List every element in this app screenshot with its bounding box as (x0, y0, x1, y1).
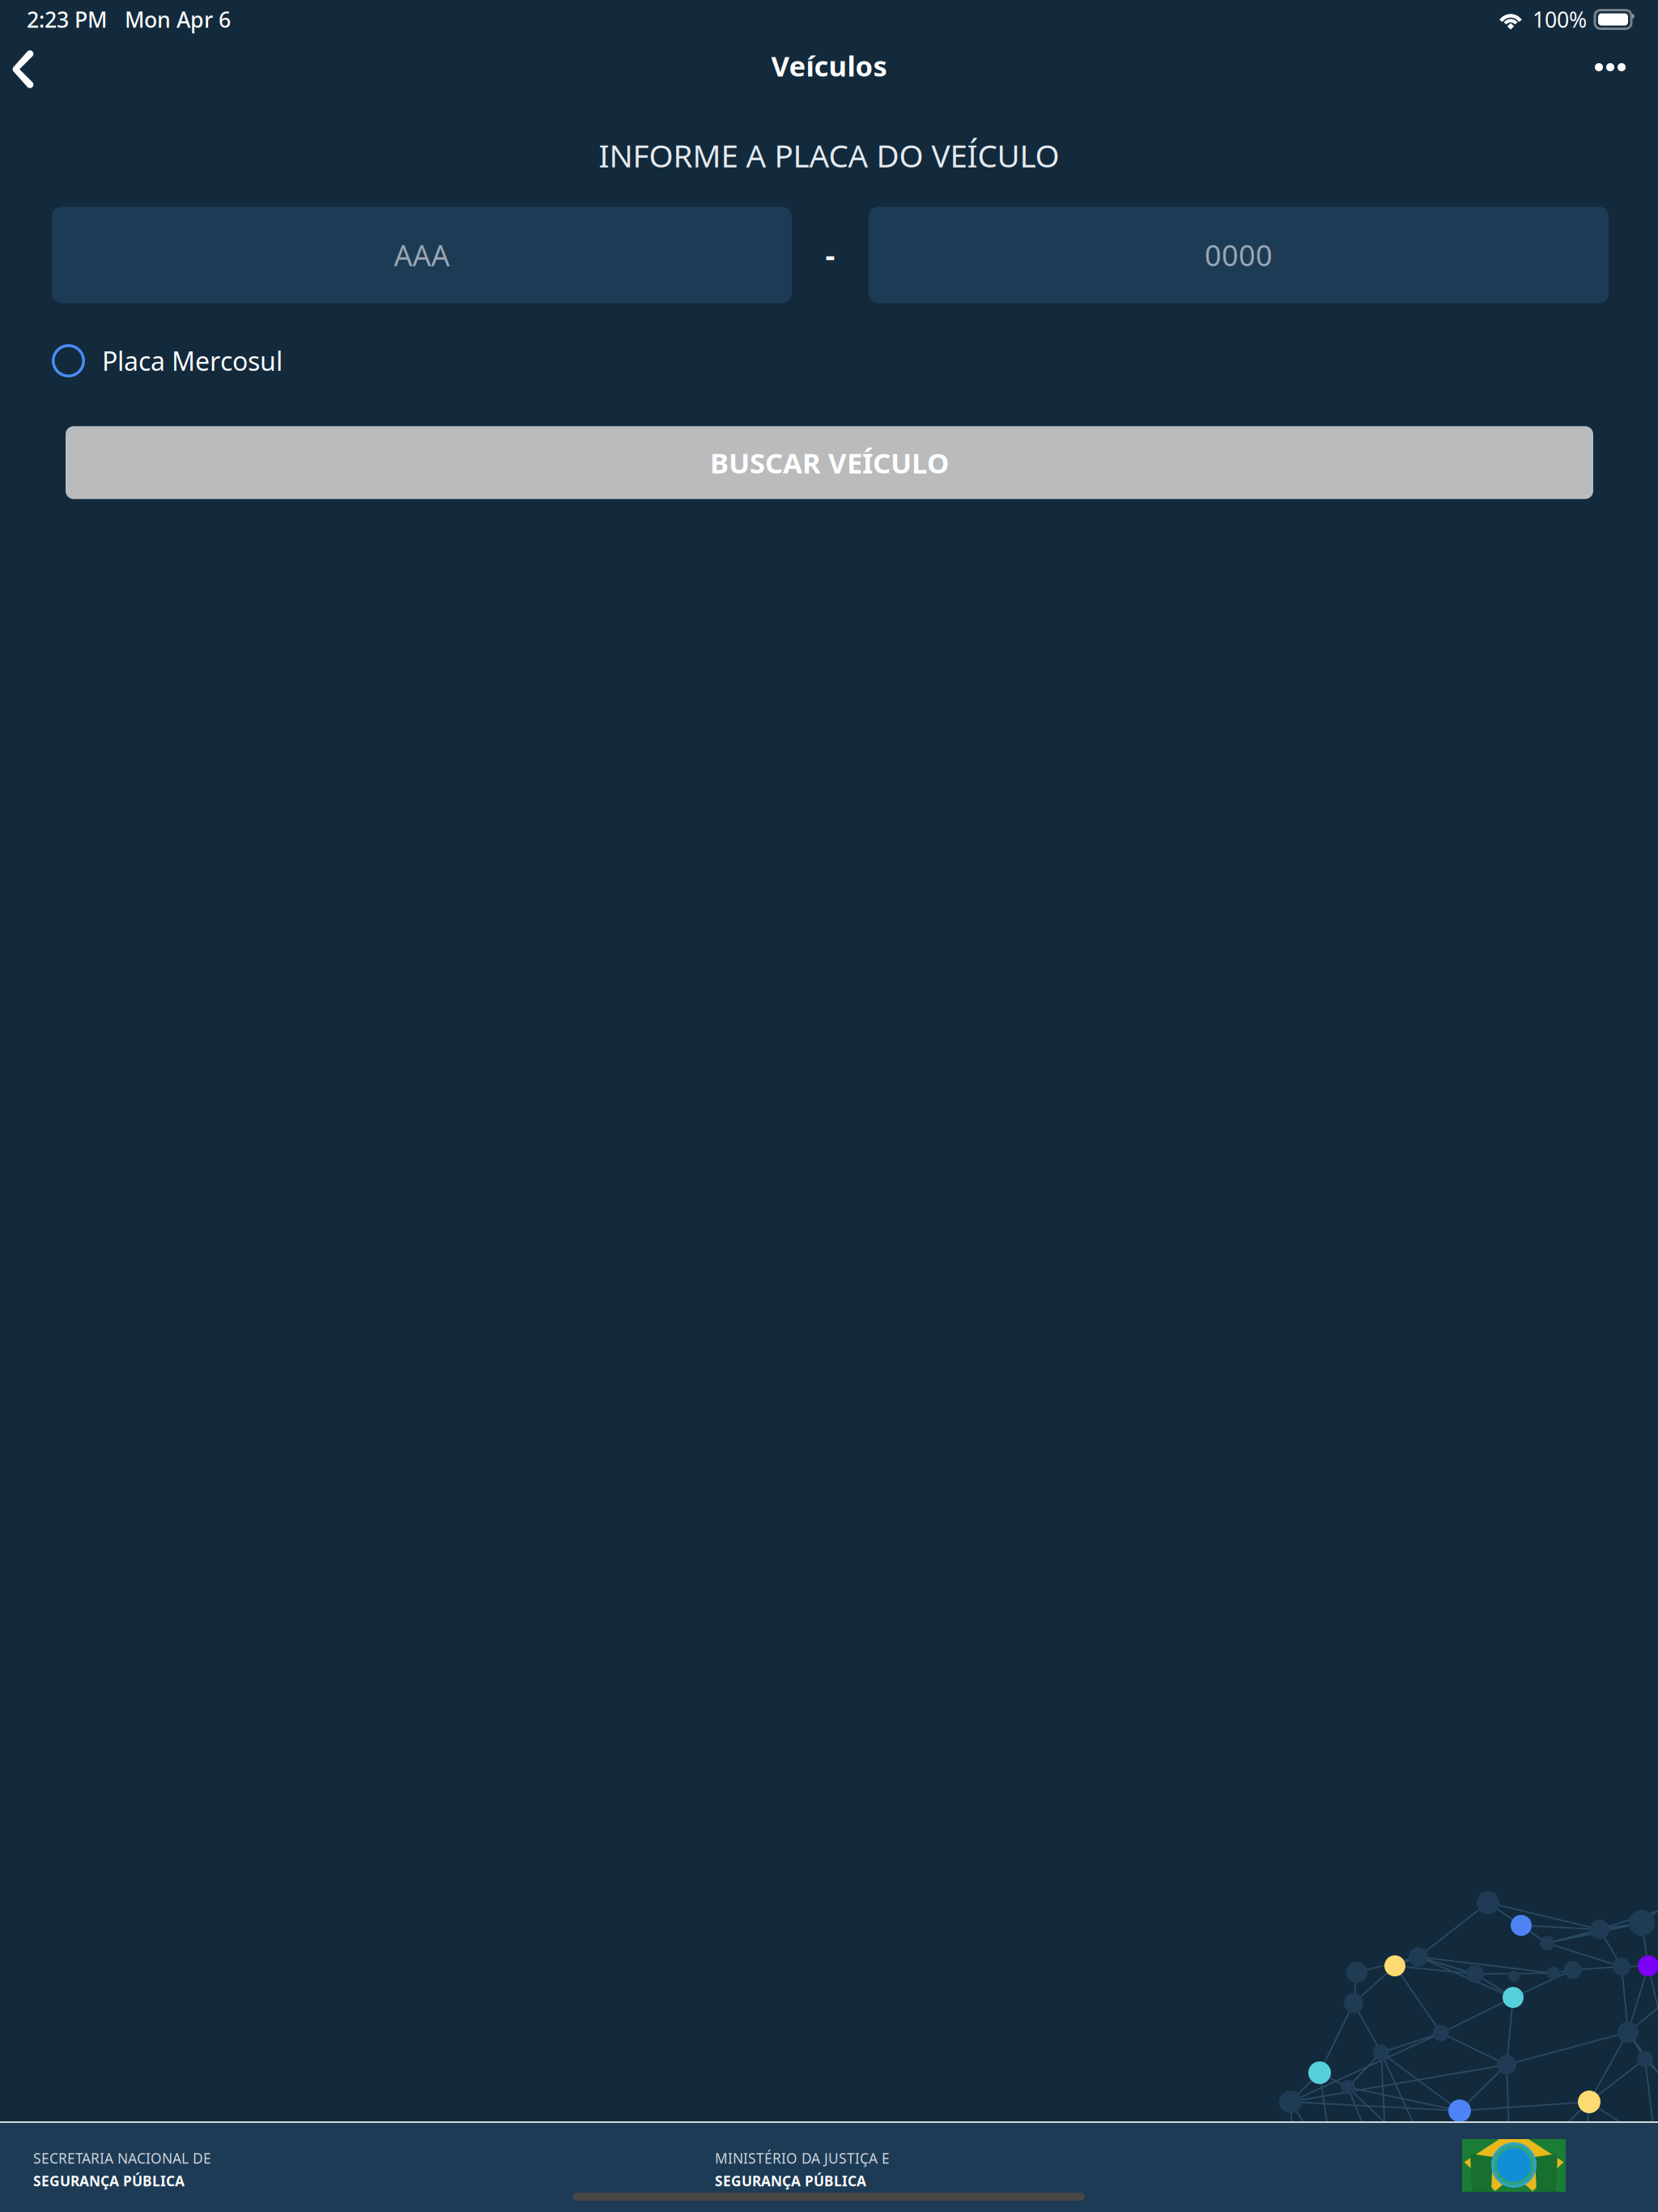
staticText: AAA (394, 236, 450, 274)
button[interactable]: Back (0, 39, 50, 100)
button[interactable]: BUSCAR VEÍCULO (0, 426, 1658, 499)
staticText: SEGURANÇA PÚBLICA (33, 2172, 185, 2190)
button[interactable]: More options (1567, 41, 1658, 98)
staticText: BUSCAR VEÍCULO (710, 444, 949, 481)
staticText: - (825, 235, 835, 275)
staticText: 0000 (1205, 236, 1273, 274)
staticText: 2:23 PM (27, 5, 107, 34)
staticText: MINISTÉRIO DA JUSTIÇA E (715, 2149, 890, 2167)
staticText: SECRETARIA NACIONAL DE (33, 2149, 211, 2167)
staticText: Veículos (771, 47, 887, 84)
staticText: Mon Apr 6 (125, 5, 231, 34)
button[interactable]: Placa Mercosul (0, 324, 1658, 395)
staticText: 100% (1533, 5, 1587, 34)
staticText: SEGURANÇA PÚBLICA (715, 2172, 866, 2190)
staticText: INFORME A PLACA DO VEÍCULO (599, 134, 1059, 176)
staticText: Placa Mercosul (102, 344, 283, 378)
